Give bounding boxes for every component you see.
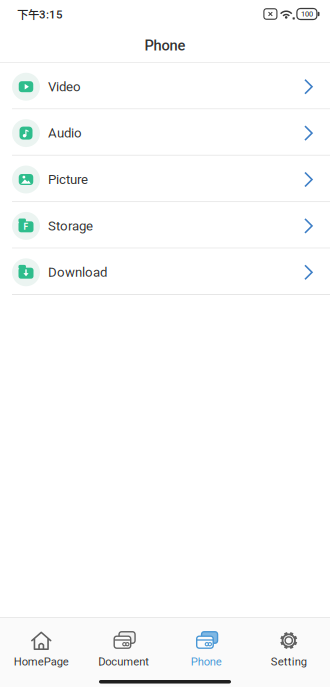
staticText: Audio [48, 125, 82, 141]
button[interactable]: Phone [165, 630, 247, 668]
button[interactable]: Video [0, 63, 330, 109]
staticText: Storage [48, 218, 93, 234]
button[interactable]: Download [0, 249, 330, 295]
staticText: 100 [301, 10, 313, 18]
staticText: Download [48, 265, 107, 280]
button[interactable]: Document [82, 630, 165, 668]
button[interactable]: HomePage [0, 630, 82, 668]
staticText: F [23, 222, 28, 232]
staticText: Setting [271, 655, 307, 668]
staticText: Picture [48, 172, 88, 187]
button[interactable]: F [0, 202, 330, 249]
staticText: Video [48, 79, 81, 94]
button[interactable]: Picture [0, 156, 330, 202]
staticText: Phone [144, 37, 185, 54]
staticText: HomePage [14, 655, 69, 668]
button[interactable]: Audio [0, 109, 330, 156]
staticText: 下午3:15 [17, 6, 63, 22]
staticText: Phone [191, 655, 222, 668]
button[interactable]: Setting [247, 630, 330, 668]
staticText: Document [98, 655, 149, 668]
